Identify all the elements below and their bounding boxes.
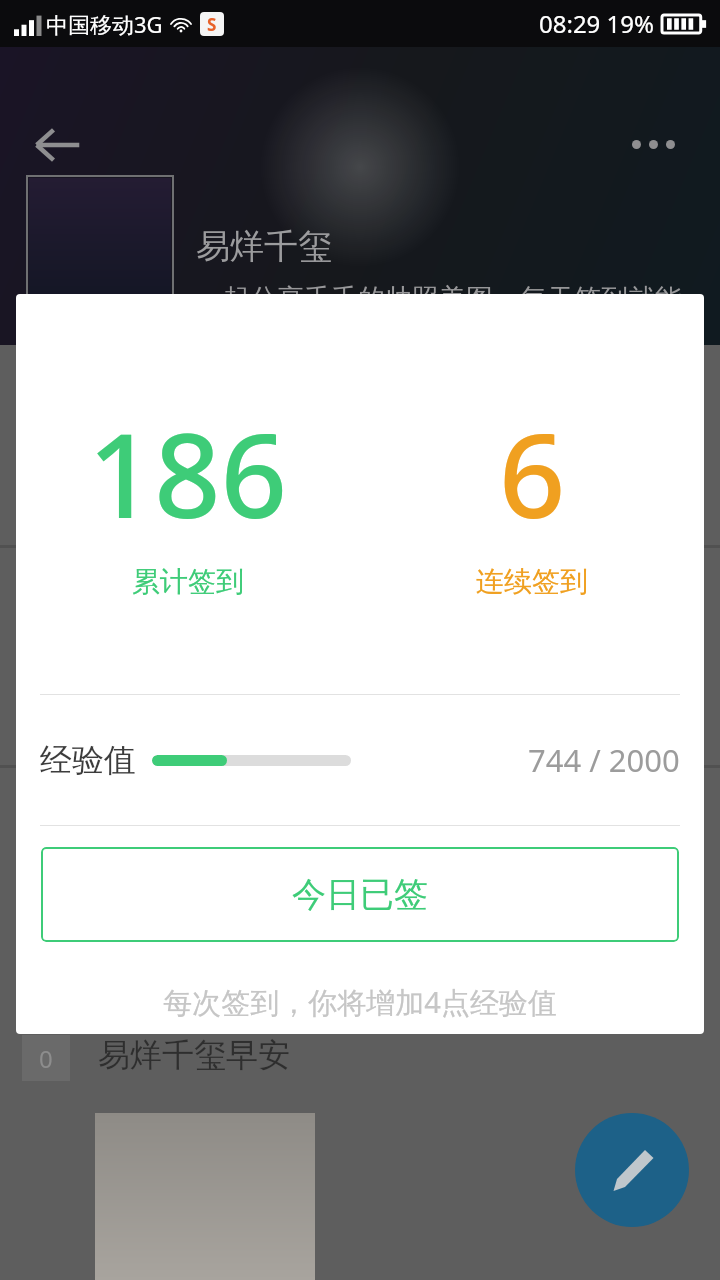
staticText: 中国移动3G (46, 9, 163, 39)
staticText: 186 (88, 394, 288, 552)
staticText: 易烊千玺 (196, 225, 332, 268)
button[interactable]: 今日已签 (41, 847, 679, 942)
staticText: 744 / 2000 (528, 739, 680, 781)
staticText: 0 (39, 1042, 53, 1075)
staticText: 累计签到 (132, 564, 244, 599)
staticText: 一起分享千千的帅照美图。每天签到就能帮club上榜，精彩更新都在这里哦! (196, 282, 696, 345)
button[interactable]: Compose post (575, 1113, 689, 1227)
button[interactable]: More options (632, 129, 688, 159)
staticText: 连续签到 (476, 564, 588, 599)
staticText: 08:29 19% (539, 7, 654, 40)
staticText: 今日已签 (292, 873, 428, 916)
staticText: 6 (499, 394, 566, 552)
staticText: S (207, 13, 217, 36)
staticText: 易烊千玺早安 (98, 1035, 290, 1075)
staticText: 经验值 (40, 740, 136, 780)
button[interactable]: Back (30, 117, 86, 173)
staticText: 每次签到，你将增加4点经验值 还可以帮Club上榜哦 (16, 982, 704, 1034)
